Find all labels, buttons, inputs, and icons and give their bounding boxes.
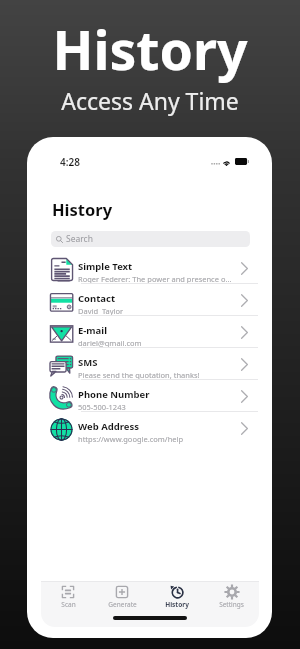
staticText: Phone Number [78,388,150,401]
staticText: Contact [78,292,116,305]
staticText: 4:28 [60,155,80,169]
button[interactable]: Settings [204,583,259,609]
staticText: Simple Text [78,260,133,273]
button[interactable]: E-mail [27,316,272,348]
staticText: Settings [219,600,244,609]
staticText: Search [66,233,93,245]
staticText: Scan [61,600,76,609]
staticText: History [52,198,113,220]
button[interactable]: Contact [27,284,272,316]
staticText: https://www.google.com/help [78,434,184,444]
staticText: SMS [78,356,98,369]
staticText: Access Any Time [0,85,300,116]
staticText: Please send the quotation, thanks! [78,370,200,380]
button[interactable]: Simple Text [27,252,272,284]
staticText: History [165,600,189,609]
staticText: Web Address [78,420,139,433]
button[interactable]: Web Address [27,412,272,444]
staticText: Roger Federer: The power and presence o… [78,274,232,284]
button[interactable]: Scan [41,583,95,609]
staticText: History [0,13,300,86]
staticText: E-mail [78,324,107,337]
button[interactable]: Generate [95,583,149,609]
staticText: dariel@gmail.com [78,338,142,348]
staticText: 505-500-1243 [78,402,126,412]
button[interactable]: Phone Number [27,380,272,412]
staticText: Generate [108,600,137,609]
staticText: David Taylor [78,306,124,316]
button[interactable]: Search [51,231,250,247]
button[interactable]: SMS [27,348,272,380]
button[interactable]: History [149,583,204,609]
